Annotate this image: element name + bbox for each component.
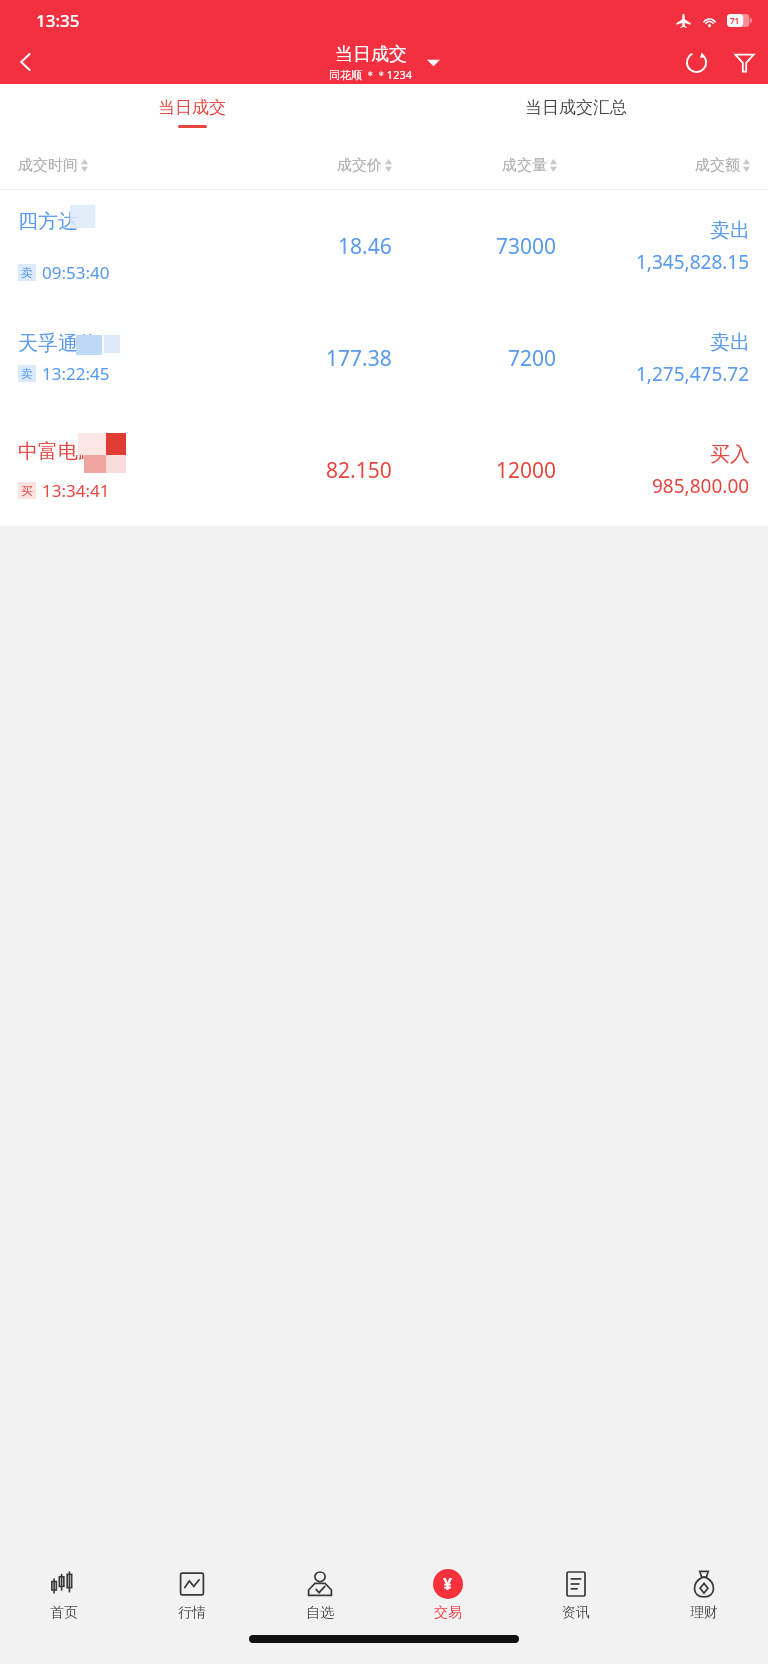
staticText: 73000 [496, 232, 557, 261]
staticText: 自选 [306, 1604, 334, 1622]
button[interactable]: 理财 [640, 1550, 768, 1640]
staticText: 18.46 [338, 232, 392, 261]
staticText: 天孚通信 [18, 331, 98, 356]
button[interactable]: Refresh [672, 40, 720, 84]
staticText: 买入 [710, 442, 750, 467]
button[interactable]: Back [0, 40, 52, 84]
staticText: 成交量 [502, 156, 547, 175]
button[interactable]: 成交价 [227, 141, 392, 189]
staticText: 买 [21, 483, 33, 498]
staticText: 71 [730, 15, 740, 26]
staticText: 1,275,475.72 [636, 361, 750, 387]
staticText: 当日成交 [158, 97, 226, 118]
staticText: 卖 [21, 366, 33, 381]
staticText: 同花顺 ＊＊1234 [329, 67, 413, 82]
staticText: 13:22:45 [42, 362, 110, 385]
staticText: 四方达 [18, 209, 78, 234]
button[interactable]: 四方达 [0, 190, 768, 302]
staticText: 12000 [496, 456, 557, 485]
button[interactable]: 天孚通信 [0, 302, 768, 414]
staticText: 卖 [21, 265, 33, 280]
staticText: 中富电路 [18, 439, 98, 464]
button[interactable]: 当日成交汇总 [384, 84, 768, 141]
staticText: 当日成交汇总 [525, 97, 627, 118]
staticText: 卖出 [710, 218, 750, 243]
button[interactable]: 资讯 [512, 1550, 640, 1640]
staticText: 177.38 [326, 344, 392, 373]
staticText: 行情 [178, 1604, 206, 1622]
button[interactable]: 成交时间 [0, 141, 227, 189]
button[interactable]: 自选 [256, 1550, 384, 1640]
staticText: 成交时间 [18, 156, 78, 175]
staticText: 资讯 [562, 1604, 590, 1622]
staticText: 1,345,828.15 [636, 249, 750, 275]
button[interactable]: ¥ [384, 1550, 512, 1640]
staticText: 当日成交 [335, 43, 407, 66]
staticText: 交易 [434, 1604, 462, 1622]
staticText: 985,800.00 [652, 473, 750, 499]
button[interactable]: 中富电路 [0, 414, 768, 526]
button[interactable]: 成交额 [557, 141, 768, 189]
staticText: ¥ [443, 1573, 453, 1595]
button[interactable]: Filter [720, 40, 768, 84]
button[interactable]: 当日成交 [329, 43, 440, 82]
staticText: 卖出 [710, 330, 750, 355]
staticText: 13:34:41 [42, 479, 110, 502]
staticText: 成交额 [695, 156, 740, 175]
staticText: 09:53:40 [42, 261, 110, 284]
button[interactable]: 首页 [0, 1550, 128, 1640]
staticText: 首页 [50, 1604, 78, 1622]
staticText: 成交价 [337, 156, 382, 175]
button[interactable]: 行情 [128, 1550, 256, 1640]
staticText: 7200 [508, 344, 557, 373]
staticText: 13:35 [36, 9, 80, 32]
button[interactable]: 成交量 [392, 141, 557, 189]
staticText: 82.150 [326, 456, 392, 485]
staticText: 理财 [690, 1604, 718, 1622]
button[interactable]: 当日成交 [0, 84, 384, 141]
